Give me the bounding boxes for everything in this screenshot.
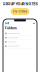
staticText: 9:41 (5, 22, 9, 25)
staticText: GROUP YOUR NOTES (2, 2, 37, 6)
button[interactable] (5, 36, 35, 40)
button[interactable]: Try it free (10, 8, 29, 15)
button[interactable] (5, 40, 35, 44)
button[interactable] (5, 31, 35, 36)
button[interactable] (5, 44, 35, 48)
staticText: Folders (5, 26, 17, 30)
staticText: Try it free (12, 10, 27, 13)
